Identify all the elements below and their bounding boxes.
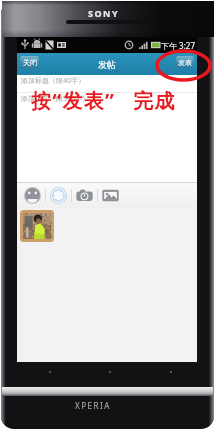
staticText: 添加正文（限500字） [21, 94, 90, 104]
button[interactable]: Gallery [98, 182, 123, 208]
staticText: 发表 [178, 58, 192, 67]
staticText: 添加标题（限40字） [21, 76, 86, 86]
staticText: 下午 3:27 [161, 40, 195, 51]
staticText: XPERIA [75, 400, 111, 411]
button[interactable]: Topic [46, 182, 71, 208]
button[interactable]: Emoji [20, 182, 45, 208]
button[interactable] [23, 213, 51, 239]
staticText: SONY [88, 7, 120, 19]
button[interactable]: 关闭 [20, 56, 39, 69]
button[interactable]: 发表 [176, 56, 194, 69]
staticText: 按“发表” 完成 [31, 87, 176, 114]
staticText: 关闭 [23, 58, 37, 67]
staticText: 发帖 [98, 59, 116, 70]
button[interactable]: Camera [72, 182, 97, 208]
